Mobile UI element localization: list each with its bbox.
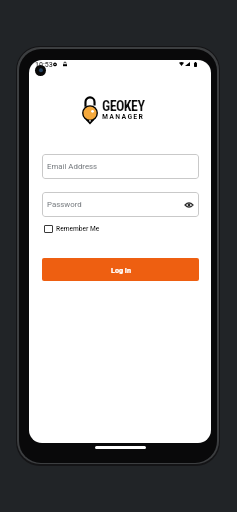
staticText: Remember Me bbox=[56, 225, 100, 233]
button[interactable]: Show password bbox=[183, 199, 195, 211]
staticText: GEOKEY bbox=[102, 98, 145, 114]
button[interactable]: Remember Me bbox=[44, 223, 100, 235]
button[interactable]: Email Address bbox=[42, 154, 199, 179]
staticText: Password bbox=[47, 200, 82, 209]
button[interactable]: Log In bbox=[42, 258, 199, 281]
staticText: 10:53 bbox=[35, 61, 53, 69]
staticText: Email Address bbox=[47, 162, 98, 171]
staticText: MANAGER bbox=[102, 112, 145, 121]
staticText: Log In bbox=[111, 266, 131, 274]
button[interactable]: Password bbox=[42, 192, 199, 217]
